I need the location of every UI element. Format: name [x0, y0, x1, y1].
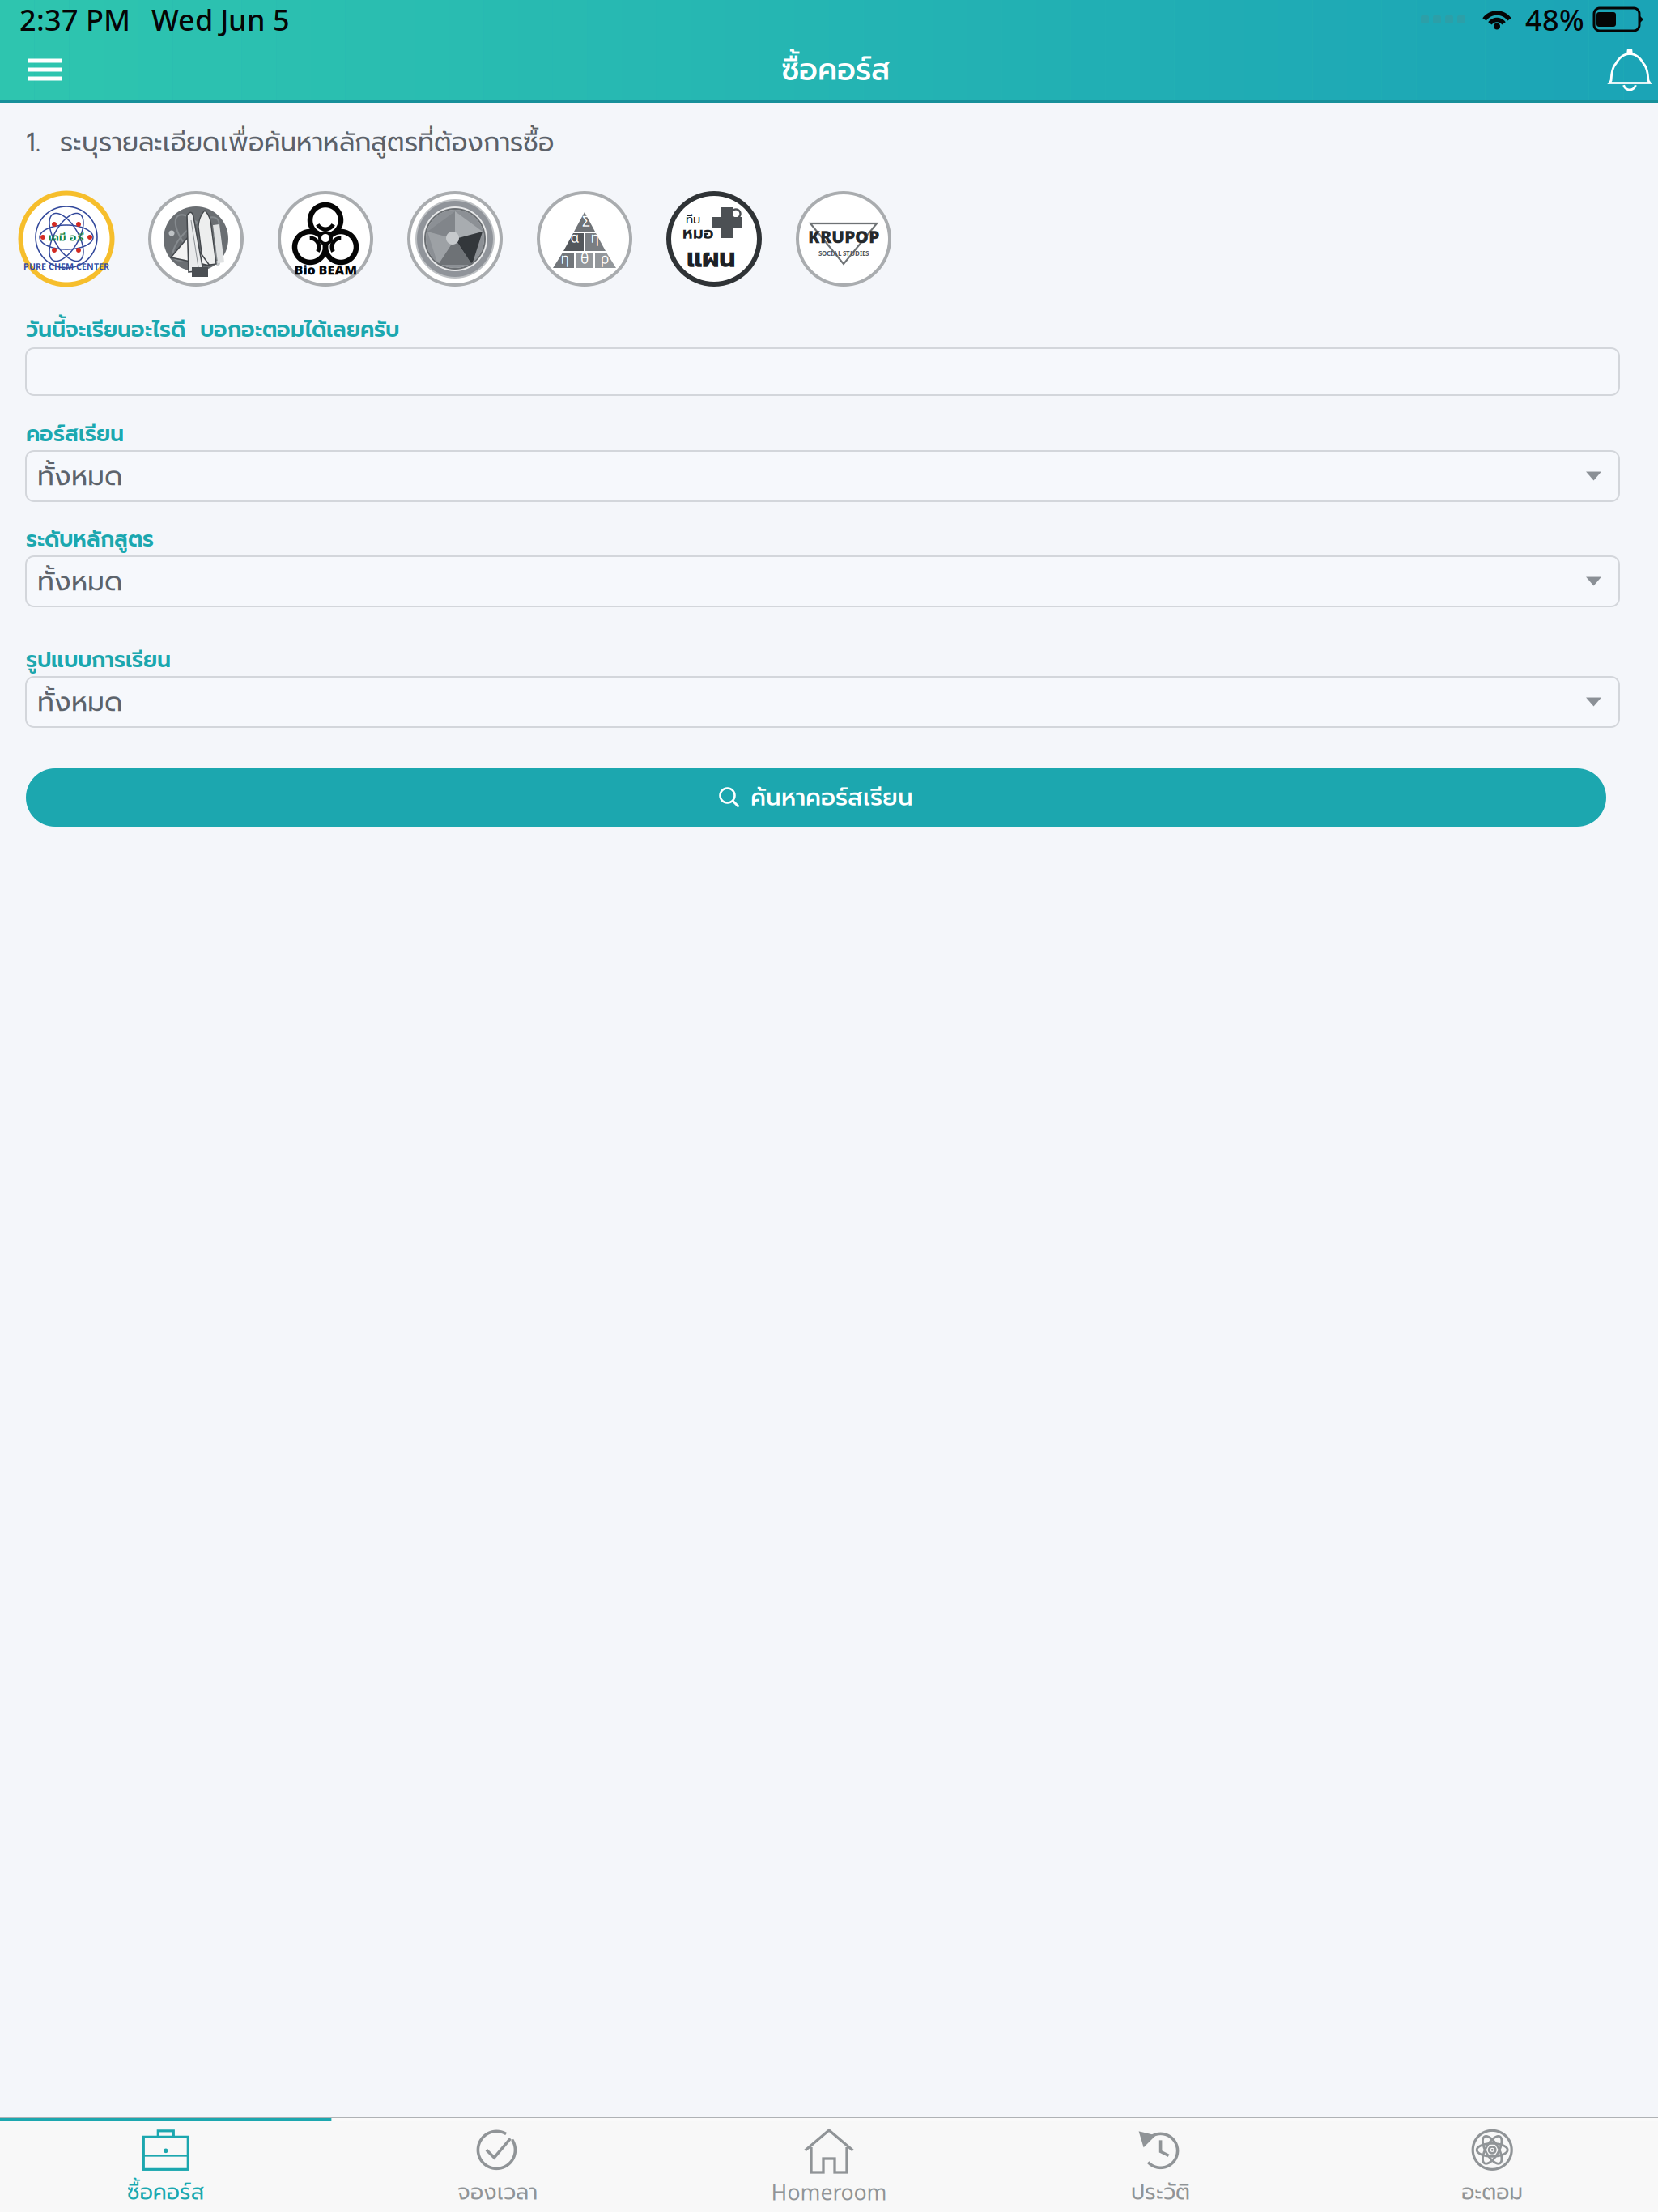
staticText: 1. ระบุรายละเอียดเพื่อค้นหาหลักสูตรที่ต้… — [26, 123, 554, 162]
button[interactable]: Bio BEAM — [278, 191, 373, 287]
button[interactable]: Math Pyramid — [537, 191, 632, 287]
button[interactable]: Space Academy — [148, 191, 244, 287]
button[interactable]: ซื้อคอร์ส — [0, 2119, 332, 2212]
staticText: ทั้งหมด — [37, 682, 123, 722]
staticText: ทีม — [686, 210, 700, 228]
staticText: ระดับหลักสูตร — [26, 523, 154, 556]
staticText: η — [591, 228, 599, 247]
button[interactable]: ทั้งหมด — [0, 677, 1658, 727]
staticText: Wed Jun 5 — [151, 0, 290, 39]
button[interactable]: Pure Chem Center — [19, 191, 114, 287]
staticText: วันนี้จะเรียนอะไรดี บอกอะตอมได้เลยครับ — [26, 313, 399, 346]
staticText: หมอ — [682, 221, 713, 245]
button[interactable]: Medal Academy — [407, 191, 503, 287]
button[interactable]: จองเวลา — [332, 2119, 663, 2212]
button[interactable]: ประวัติ — [995, 2119, 1326, 2212]
staticText: เคมี อ.ธี — [49, 229, 84, 245]
staticText: KRUPOP — [808, 225, 879, 248]
staticText: 2:37 PM — [19, 0, 130, 39]
button[interactable]: ทั้งหมด — [0, 556, 1658, 606]
button[interactable]: Homeroom — [663, 2119, 995, 2212]
button[interactable]: Notifications — [1588, 39, 1658, 100]
button[interactable]: อะตอม — [1326, 2119, 1658, 2212]
staticText: ประวัติ — [1131, 2176, 1190, 2208]
staticText: Σ — [582, 212, 590, 230]
staticText: ทั้งหมด — [37, 456, 123, 496]
staticText: อะตอม — [1461, 2176, 1523, 2208]
staticText: Bio BEAM — [294, 261, 357, 278]
button[interactable]: Krupop Social Studies — [796, 191, 891, 287]
staticText: คอร์สเรียน — [26, 418, 124, 450]
staticText: SOCIAL STUDIES — [818, 249, 869, 258]
staticText: α — [570, 228, 579, 247]
staticText: ซื้อคอร์ส — [781, 47, 891, 92]
staticText: η — [561, 249, 570, 268]
staticText: ค้นหาคอร์สเรียน — [750, 780, 913, 815]
staticText: ซื้อคอร์ส — [127, 2176, 205, 2208]
staticText: รูปแบบการเรียน — [26, 644, 171, 676]
button[interactable]: Doctor Team — [666, 191, 762, 287]
staticText: ρ — [601, 249, 609, 268]
staticText: ทั้งหมด — [37, 561, 123, 602]
staticText: จองเวลา — [457, 2176, 537, 2208]
staticText: แผน — [687, 239, 735, 278]
staticText: Homeroom — [771, 2178, 887, 2206]
staticText: PURE CHEM CENTER — [23, 261, 109, 272]
button[interactable]: ค้นหาคอร์สเรียน — [0, 768, 1658, 827]
button[interactable]: Menu — [0, 39, 83, 100]
button[interactable]: ทั้งหมด — [0, 451, 1658, 501]
staticText: 48% — [1525, 0, 1584, 39]
staticText: θ — [580, 249, 589, 268]
